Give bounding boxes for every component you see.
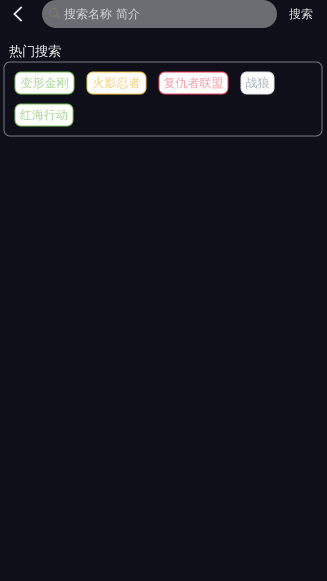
- button[interactable]: 火影忍者: [87, 72, 146, 94]
- staticText: 变形金刚: [20, 76, 68, 90]
- button[interactable]: 复仇者联盟: [159, 72, 228, 94]
- staticText: 红海行动: [20, 108, 68, 122]
- button[interactable]: 搜索: [282, 0, 320, 28]
- button[interactable]: Back: [1, 0, 35, 28]
- staticText: 热门搜索: [9, 43, 61, 59]
- staticText: 战狼: [245, 76, 269, 90]
- button[interactable]: 红海行动: [15, 104, 73, 126]
- button[interactable]: 战狼: [241, 72, 274, 94]
- staticText: 复仇者联盟: [163, 76, 223, 90]
- staticText: 火影忍者: [92, 76, 140, 90]
- button[interactable]: 变形金刚: [15, 72, 74, 94]
- staticText: 搜索: [289, 7, 313, 21]
- staticText: 搜索名称 简介: [64, 7, 140, 21]
- button[interactable]: 搜索名称 简介: [42, 0, 277, 28]
